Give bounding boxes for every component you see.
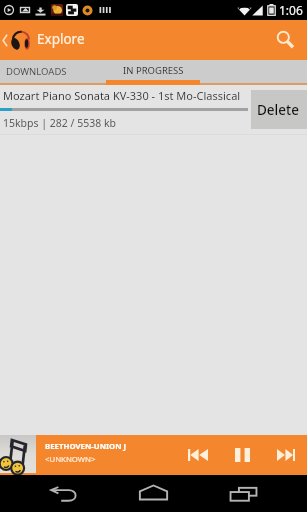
staticText: <UNKNOWN> <box>45 454 96 465</box>
staticText: Delete <box>257 101 299 119</box>
button[interactable]: Home <box>113 475 194 512</box>
button[interactable]: Next track <box>266 435 306 475</box>
button[interactable]: Search <box>263 20 307 60</box>
staticText: Mozart Piano Sonata KV-330 - 1st Mo-Clas… <box>3 88 241 103</box>
button[interactable]: Back <box>0 20 85 60</box>
staticText: DOWNLOADS <box>6 65 67 78</box>
staticText: 1:06 <box>279 2 303 18</box>
staticText: BEETHOVEN-UNION J <box>45 441 127 452</box>
button[interactable]: Mozart Piano Sonata KV-330 - 1st Mo-Clas… <box>0 85 307 135</box>
button[interactable]: IN PROGRESS <box>106 60 200 85</box>
staticText: Explore <box>37 30 85 48</box>
button[interactable]: Previous track <box>178 435 218 475</box>
staticText: 15kbps | 282 / 5538 kb <box>3 116 117 130</box>
button[interactable]: DOWNLOADS <box>0 60 106 85</box>
button[interactable]: Back <box>24 475 104 512</box>
button[interactable]: Recent apps <box>203 475 283 512</box>
button[interactable]: Pause <box>222 435 262 475</box>
other: Back <box>0 20 10 60</box>
button[interactable]: Delete <box>251 90 307 129</box>
staticText: IN PROGRESS <box>123 64 184 77</box>
